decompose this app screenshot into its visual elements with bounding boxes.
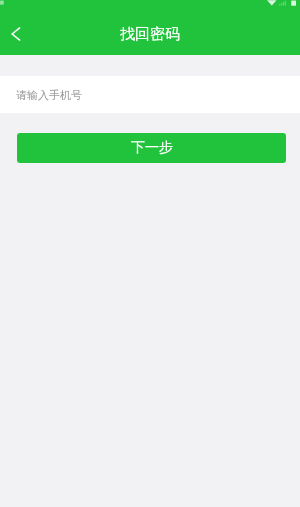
- button[interactable]: 下一步: [17, 133, 286, 163]
- button[interactable]: Back: [0, 12, 32, 55]
- staticText: 下一步: [131, 139, 173, 157]
- staticText: 找回密码: [120, 25, 180, 44]
- staticText: 请输入手机号: [16, 88, 82, 102]
- button[interactable]: 请输入手机号: [0, 76, 300, 113]
